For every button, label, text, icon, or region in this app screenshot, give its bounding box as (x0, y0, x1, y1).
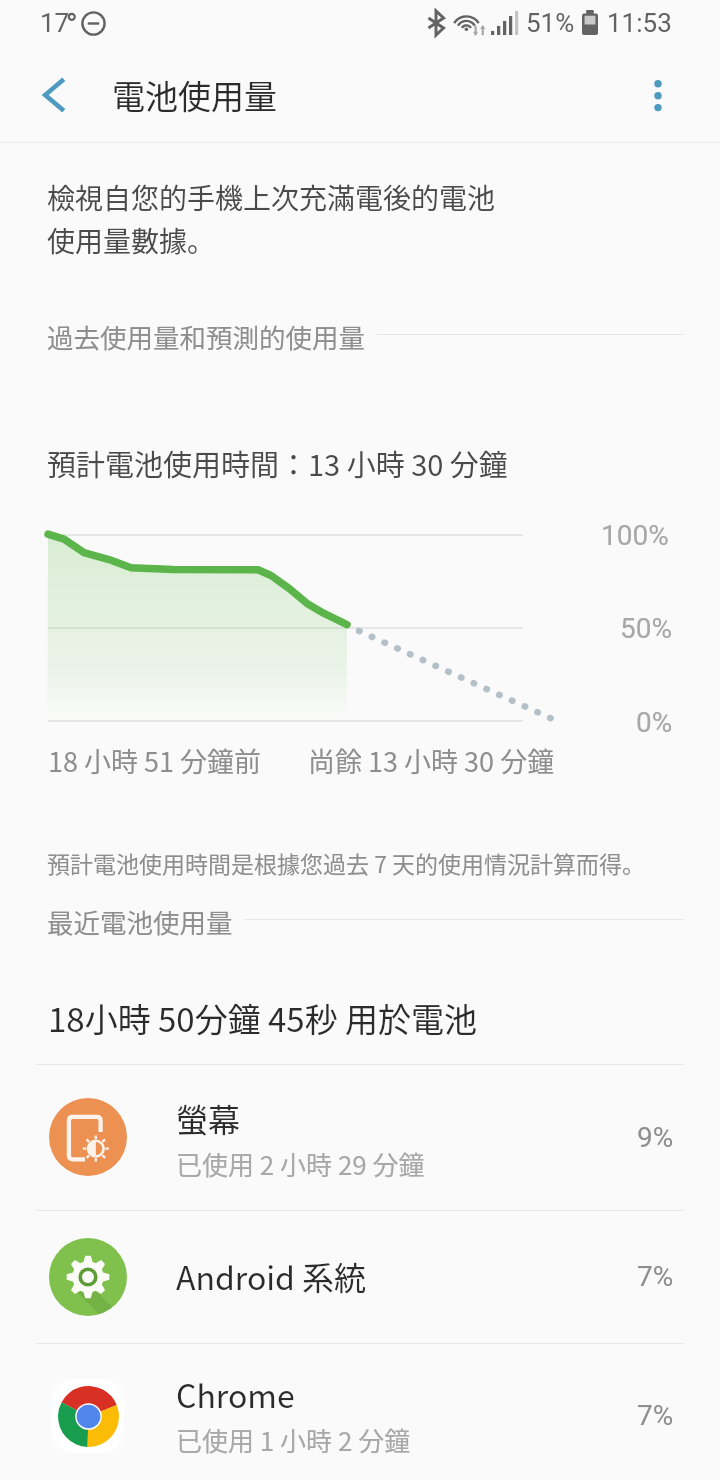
staticText: 11:53 (607, 8, 672, 38)
staticText: 7% (637, 1260, 674, 1293)
button[interactable]: More options (618, 56, 700, 142)
button[interactable]: Back (10, 56, 100, 142)
staticText: 過去使用量和預測的使用量 (47, 317, 365, 351)
staticText: 7% (637, 1399, 674, 1432)
button[interactable]: Chrome (0, 1343, 720, 1480)
staticText: 預計電池使用時間是根據您過去 7 天的使用情況計算而得。 (47, 846, 646, 879)
staticText: 0% (636, 706, 673, 739)
staticText: 100% (601, 519, 669, 552)
staticText: 已使用 2 小時 29 分鐘 (176, 1145, 425, 1183)
staticText: 預計電池使用時間：13 小時 30 分鐘 (47, 442, 508, 484)
staticText: 9% (637, 1121, 674, 1154)
staticText: 50% (620, 612, 672, 645)
staticText: 螢幕 (176, 1095, 241, 1141)
staticText: Android 系統 (176, 1253, 367, 1299)
staticText: 尚餘 13 小時 30 分鐘 (308, 741, 555, 780)
staticText: 電池使用量 (112, 71, 277, 119)
staticText: Chrome (176, 1371, 295, 1417)
button[interactable]: 螢幕 (0, 1064, 720, 1210)
staticText: 17 (40, 8, 70, 38)
button[interactable]: Android 系統 (0, 1210, 720, 1343)
staticText: 18 小時 51 分鐘前 (48, 741, 262, 780)
staticText: 51% (526, 8, 575, 38)
staticText: 最近電池使用量 (47, 902, 233, 936)
staticText: 已使用 1 小時 2 分鐘 (176, 1421, 411, 1459)
staticText: 檢視自您的手機上次充滿電後的電池 使用量數據。 (47, 177, 496, 261)
staticText: 18小時 50分鐘 45秒 用於電池 (48, 994, 478, 1042)
